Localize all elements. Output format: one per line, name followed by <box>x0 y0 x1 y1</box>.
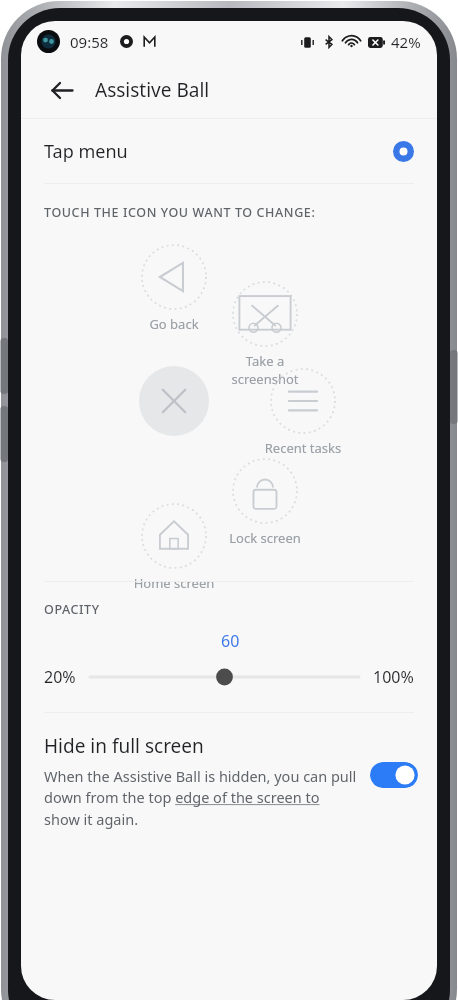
staticText: TOUCH THE ICON YOU WANT TO CHANGE: <box>44 204 316 221</box>
button[interactable]: Recent tasks <box>238 367 368 457</box>
button[interactable]: 20% <box>44 662 414 692</box>
staticText: Recent tasks <box>238 439 368 457</box>
button[interactable]: Take a screenshot <box>200 280 330 388</box>
staticText: 42% <box>391 32 421 52</box>
button[interactable]: Lock screen <box>200 457 330 547</box>
staticText: Home screen <box>109 574 239 592</box>
staticText: Take a screenshot <box>200 352 330 388</box>
button[interactable]: Back <box>42 70 82 110</box>
staticText: Hide in full screen <box>44 733 204 759</box>
button[interactable]: Hide in full screen <box>370 762 418 788</box>
staticText: Tap menu <box>44 139 128 164</box>
staticText: OPACITY <box>44 601 100 618</box>
staticText: 09:58 <box>70 32 109 52</box>
staticText: When the Assistive Ball is hidden, you c… <box>44 766 358 830</box>
staticText: Go back <box>109 315 239 333</box>
staticText: Lock screen <box>200 529 330 547</box>
button[interactable]: Go back <box>109 243 239 333</box>
button[interactable]: Tap menu <box>21 119 437 183</box>
button[interactable]: Home screen <box>109 502 239 592</box>
button[interactable]: Hide in full screen <box>21 713 437 830</box>
staticText: 100% <box>373 666 414 688</box>
staticText: 60 <box>221 630 240 652</box>
staticText: Assistive Ball <box>95 77 210 103</box>
button[interactable]: Close <box>139 366 209 436</box>
staticText: 20% <box>44 666 76 688</box>
